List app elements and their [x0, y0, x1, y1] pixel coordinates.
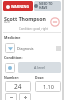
staticText: NEED TO HAVE: [39, 2, 61, 10]
staticText: 24: [14, 82, 22, 91]
button[interactable]: 24: [5, 81, 31, 92]
staticText: WARNING: [11, 4, 30, 9]
button[interactable]: 1.10: [35, 81, 61, 92]
button[interactable]: Diagnosis: [17, 43, 56, 53]
staticText: 1.10: [43, 83, 54, 90]
staticText: Dose:: [35, 75, 45, 80]
button[interactable]: Medicine icon: [5, 43, 15, 53]
staticText: Diagnosis: [17, 46, 34, 51]
button[interactable]: NEED TO HAVE: [34, 1, 61, 11]
button[interactable]: Increase: [19, 93, 31, 100]
button[interactable]: WARNING: [3, 1, 33, 11]
staticText: Medicine: [4, 35, 21, 40]
button[interactable]: Restriction: [50, 17, 60, 27]
button[interactable]: A level: [18, 62, 61, 73]
staticText: A level: [34, 65, 45, 70]
button[interactable]: Decrease: [5, 93, 17, 100]
staticText: Condition: good, right: [19, 27, 48, 31]
staticText: Condition:: [4, 55, 23, 60]
staticText: Number:: [4, 75, 19, 80]
staticText: Scott Thompson: [4, 15, 46, 22]
button[interactable]: Level icon: [5, 63, 15, 73]
staticText: #28: [4, 20, 10, 24]
